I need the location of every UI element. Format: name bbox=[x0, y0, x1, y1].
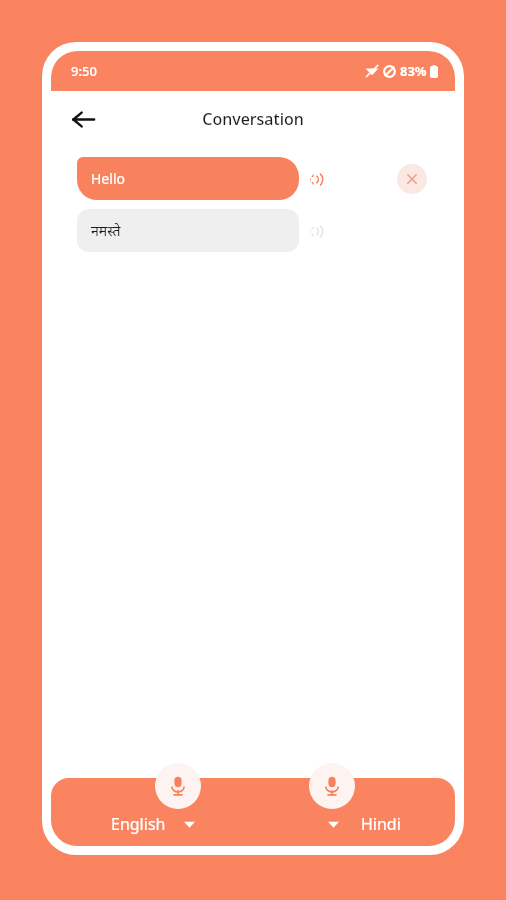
button[interactable]: Play translation audio bbox=[299, 214, 333, 248]
button[interactable]: नमस्ते bbox=[77, 209, 299, 252]
staticText: 83% bbox=[400, 62, 427, 80]
staticText: 9:50 bbox=[71, 62, 97, 80]
staticText: Hello bbox=[91, 169, 125, 188]
button[interactable]: Clear conversation bbox=[397, 164, 427, 194]
button[interactable]: Hindi bbox=[253, 813, 437, 835]
staticText: Hindi bbox=[361, 813, 401, 835]
staticText: Conversation bbox=[202, 108, 304, 130]
button[interactable]: Speak Hindi bbox=[309, 763, 355, 809]
button[interactable]: Back bbox=[61, 97, 105, 141]
staticText: English bbox=[111, 813, 166, 835]
button[interactable]: Speak English bbox=[155, 763, 201, 809]
staticText: नमस्ते bbox=[91, 221, 121, 240]
button[interactable]: English bbox=[69, 813, 253, 835]
button[interactable]: Hello bbox=[77, 157, 299, 200]
button[interactable]: Play source audio bbox=[299, 162, 333, 196]
